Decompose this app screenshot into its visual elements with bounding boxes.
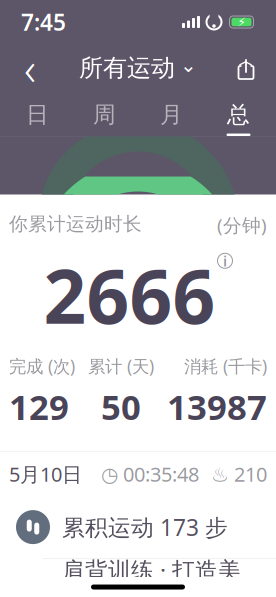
- staticText: 肩背训练 · 打造美背直肩 第1次: [62, 555, 241, 597]
- staticText: 7:45: [21, 7, 66, 37]
- staticText: 13987: [167, 383, 267, 429]
- button[interactable]: 日: [4, 92, 71, 136]
- staticText: ◷ 00:35:48: [101, 461, 199, 487]
- staticText: ⌄: [180, 54, 197, 76]
- staticText: ︿: [238, 52, 253, 70]
- staticText: ‹: [24, 38, 36, 98]
- staticText: 所有运动: [79, 53, 175, 83]
- staticText: 5月10日: [9, 461, 82, 487]
- button[interactable]: Back: [6, 46, 54, 90]
- button[interactable]: 累积运动 173 步: [0, 496, 276, 559]
- staticText: 月: [160, 101, 183, 128]
- button[interactable]: 总: [205, 92, 272, 136]
- staticText: (分钟): [217, 212, 267, 237]
- staticText: 周: [93, 101, 116, 128]
- staticText: 总: [227, 101, 250, 128]
- button[interactable]: 周: [71, 92, 138, 136]
- button[interactable]: Info: [217, 253, 232, 268]
- staticText: ⚡︎: [237, 15, 245, 29]
- staticText: 2666: [43, 245, 215, 344]
- staticText: i: [223, 251, 227, 271]
- staticText: 129: [9, 383, 69, 429]
- staticText: 50: [101, 383, 141, 429]
- button[interactable]: Share: [222, 46, 270, 90]
- staticText: 你累计运动时长: [9, 212, 142, 235]
- button[interactable]: 肩背训练 · 打造美背直肩 第1次: [0, 559, 276, 597]
- staticText: ♨ 210: [199, 461, 267, 487]
- staticText: 累积运动 173 步: [62, 512, 228, 542]
- staticText: 累计 (天): [88, 354, 154, 377]
- staticText: 消耗 (千卡): [184, 354, 267, 377]
- staticText: 日: [26, 101, 49, 128]
- button[interactable]: 月: [138, 92, 205, 136]
- staticText: 完成 (次): [9, 354, 75, 377]
